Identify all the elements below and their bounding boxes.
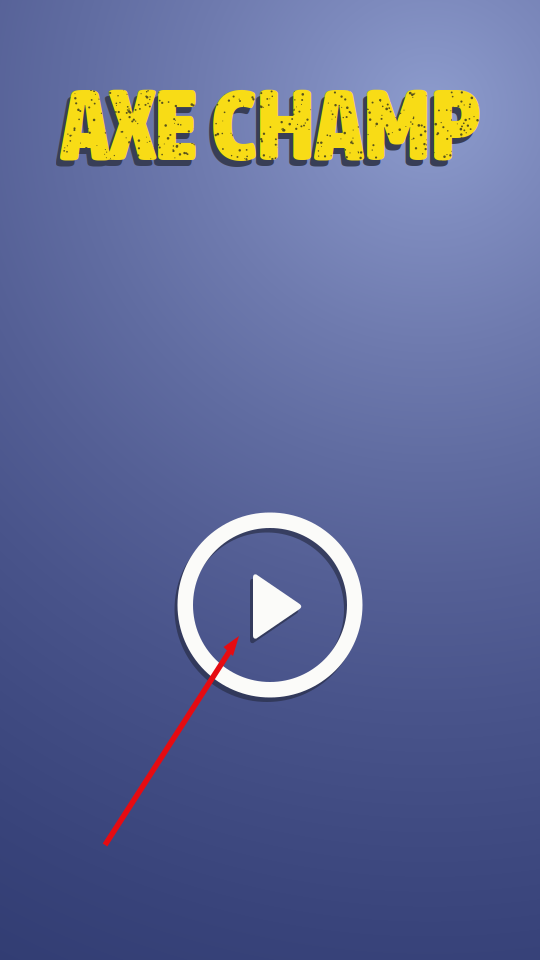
staticText: AXE CHAMP — [60, 67, 479, 181]
button[interactable]: Play — [0, 0, 540, 960]
staticText: AXE CHAMP — [56, 73, 475, 187]
